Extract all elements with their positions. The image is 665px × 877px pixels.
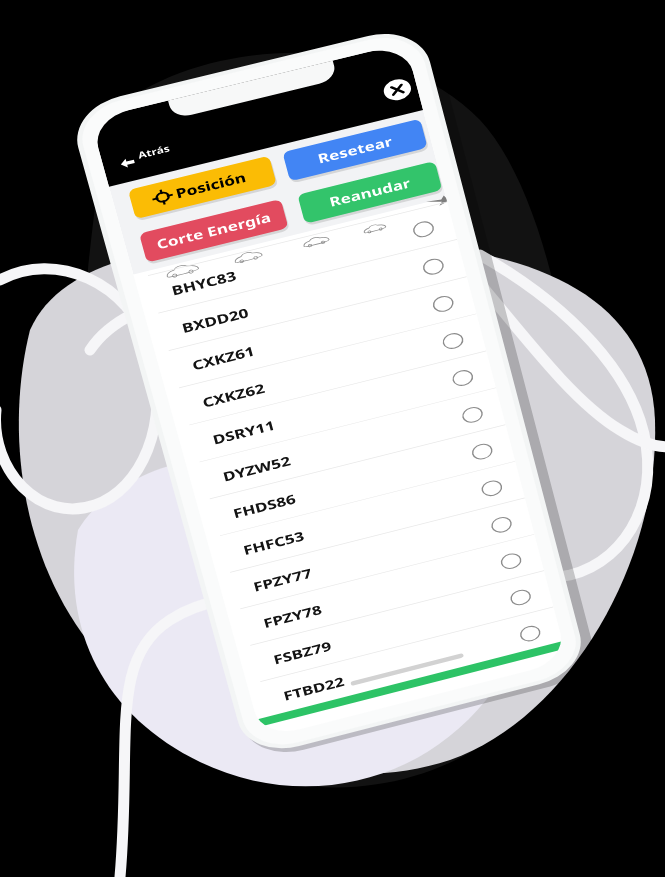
button[interactable]: Vehicle list screen mockup (0, 0, 665, 877)
